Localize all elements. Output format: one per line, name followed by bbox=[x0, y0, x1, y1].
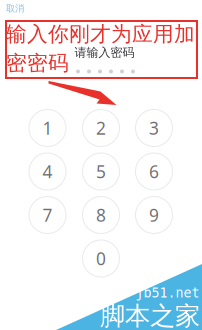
button[interactable]: 6 bbox=[135, 153, 172, 190]
button[interactable]: 8 bbox=[82, 196, 119, 233]
button[interactable]: 1 bbox=[29, 109, 66, 146]
button[interactable]: 取消 bbox=[6, 1, 38, 16]
button[interactable]: 3 bbox=[135, 109, 172, 146]
staticText: 5 bbox=[96, 160, 106, 183]
staticText: 3 bbox=[149, 116, 159, 140]
button[interactable]: 4 bbox=[29, 153, 66, 190]
staticText: 输入你刚才为应用加 bbox=[6, 21, 195, 47]
staticText: 4 bbox=[42, 160, 52, 183]
staticText: 2 bbox=[96, 116, 106, 140]
staticText: 密密码 bbox=[6, 50, 69, 76]
staticText: 脚本之家 bbox=[100, 300, 200, 330]
button[interactable]: 5 bbox=[82, 153, 119, 190]
button[interactable]: 2 bbox=[82, 109, 119, 146]
button[interactable]: 0 bbox=[82, 240, 119, 277]
staticText: 6 bbox=[149, 160, 159, 183]
staticText: 7 bbox=[42, 203, 52, 227]
staticText: 请输入密码 bbox=[74, 45, 134, 60]
staticText: 0 bbox=[96, 247, 106, 270]
staticText: 8 bbox=[96, 203, 106, 227]
staticText: 取消 bbox=[6, 3, 24, 14]
staticText: jb51.net bbox=[135, 285, 199, 301]
button[interactable]: 9 bbox=[135, 196, 172, 233]
staticText: 9 bbox=[149, 203, 159, 227]
button[interactable]: 7 bbox=[29, 196, 66, 233]
staticText: 1 bbox=[42, 116, 52, 140]
